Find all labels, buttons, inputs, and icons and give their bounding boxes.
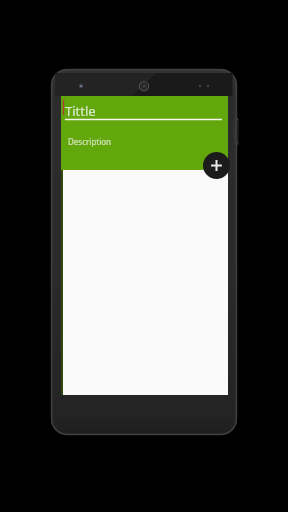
button[interactable]: Tittle <box>61 96 228 128</box>
staticText: Tittle <box>65 102 96 120</box>
button[interactable]: Description <box>61 128 228 158</box>
staticText: Description <box>68 136 112 147</box>
button[interactable]: Add <box>203 152 230 179</box>
